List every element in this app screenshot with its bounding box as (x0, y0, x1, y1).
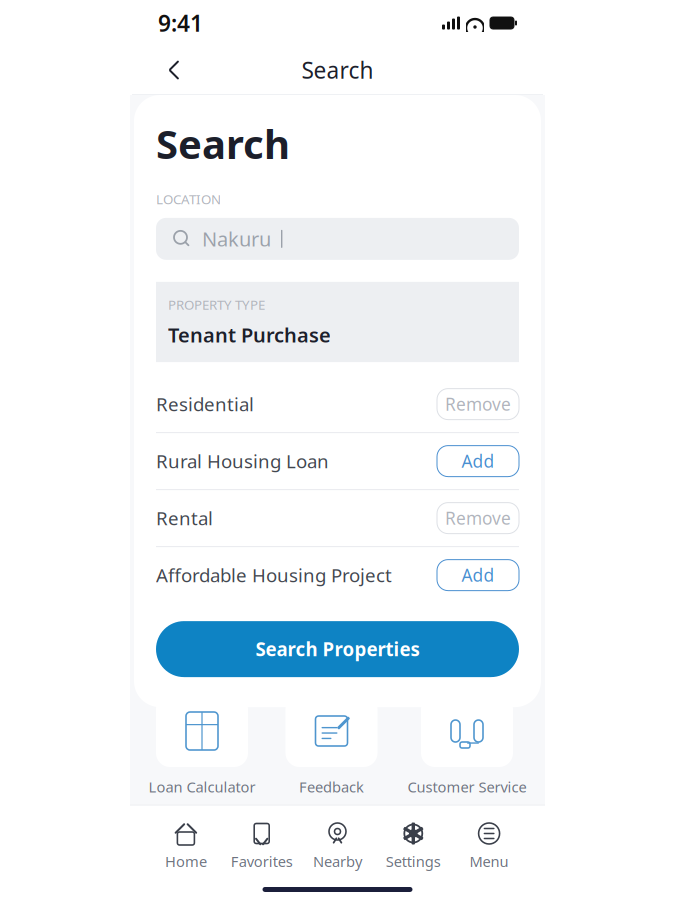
staticText: Rural Housing Loan (156, 449, 329, 473)
button[interactable]: Feedback (285, 695, 377, 796)
staticText: Loan Calculator (148, 777, 255, 796)
button[interactable]: Customer Service (407, 695, 526, 796)
staticText: Affordable Housing Project (156, 563, 392, 587)
staticText: PROPERTY TYPE (168, 296, 265, 313)
button[interactable]: Favorites (224, 815, 300, 877)
staticText: Home (165, 851, 207, 871)
staticText: Add (461, 450, 494, 473)
staticText: Nearby (313, 851, 362, 871)
staticText: Customer Service (407, 777, 526, 796)
button[interactable]: Back (154, 50, 194, 90)
staticText: Search (301, 55, 373, 85)
staticText: Menu (470, 851, 509, 871)
staticText: Favorites (231, 851, 293, 871)
staticText: Residential (156, 392, 254, 416)
staticText: 9:41 (158, 8, 203, 38)
button[interactable]: Search Properties (156, 621, 519, 677)
button[interactable]: Add (437, 560, 519, 591)
button[interactable]: Home (148, 815, 224, 877)
button[interactable]: Loan Calculator (148, 695, 255, 796)
button[interactable]: Settings (375, 815, 451, 877)
button[interactable]: Menu (451, 815, 527, 877)
staticText: Settings (386, 851, 441, 871)
button[interactable]: Remove (437, 389, 519, 420)
button[interactable]: Nearby (300, 815, 375, 877)
staticText: Search (156, 117, 290, 170)
button[interactable]: Nakuru (156, 218, 519, 260)
staticText: Remove (445, 507, 511, 530)
staticText: Nakuru (202, 226, 271, 252)
staticText: Search Properties (255, 637, 419, 661)
button[interactable]: Remove (437, 503, 519, 534)
button[interactable]: PROPERTY TYPE (156, 282, 519, 362)
staticText: Feedback (299, 777, 364, 796)
staticText: LOCATION (156, 190, 221, 208)
staticText: Rental (156, 506, 213, 530)
staticText: Tenant Purchase (168, 322, 331, 348)
staticText: Add (461, 564, 494, 587)
staticText: Remove (445, 393, 511, 416)
button[interactable]: Add (437, 446, 519, 477)
